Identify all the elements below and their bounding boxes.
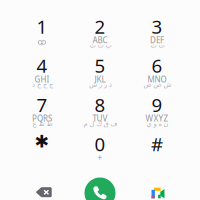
staticText: JKL: [94, 74, 105, 85]
staticText: WXYZ: [145, 113, 168, 124]
button[interactable]: 0: [72, 132, 128, 168]
staticText: 2: [94, 14, 105, 39]
button[interactable]: Delete: [22, 175, 66, 200]
staticText: ج ح خ د: [31, 81, 52, 88]
staticText: ش ص ض: [143, 81, 171, 88]
button[interactable]: 3: [129, 14, 185, 50]
staticText: #: [151, 132, 163, 156]
staticText: +: [97, 152, 102, 163]
staticText: 3: [151, 14, 162, 39]
staticText: ن ه و ي: [146, 120, 168, 127]
button[interactable]: 6: [129, 53, 185, 89]
staticText: ABC: [92, 35, 107, 45]
staticText: DEF: [150, 35, 164, 45]
button[interactable]: #: [129, 132, 185, 168]
button[interactable]: Call: [78, 174, 122, 200]
button[interactable]: 5: [72, 53, 128, 89]
button[interactable]: 8: [72, 92, 128, 128]
button[interactable]: 7: [14, 92, 70, 128]
staticText: 6: [151, 53, 162, 78]
staticText: ب ت ث: [89, 41, 111, 49]
staticText: ت ث: [150, 41, 164, 49]
staticText: MNO: [147, 74, 166, 85]
staticText: TUV: [92, 113, 107, 124]
staticText: ذ ر ز س: [88, 81, 111, 88]
staticText: ف ق ك ل م: [83, 120, 117, 127]
staticText: ✱: [34, 132, 49, 151]
staticText: 4: [36, 53, 47, 78]
staticText: 8: [94, 92, 105, 117]
staticText: 0: [94, 132, 105, 156]
button[interactable]: 1: [14, 14, 70, 50]
button[interactable]: 2: [72, 14, 128, 50]
staticText: 1: [36, 14, 47, 39]
staticText: 9: [151, 92, 162, 117]
staticText: GHI: [34, 74, 49, 85]
staticText: PQRS: [32, 113, 52, 124]
staticText: 7: [36, 92, 47, 117]
button[interactable]: 9: [129, 92, 185, 128]
button[interactable]: ✱: [14, 132, 70, 168]
button[interactable]: 4: [14, 53, 70, 89]
staticText: ط ظ ع: [32, 120, 52, 127]
staticText: 5: [94, 53, 105, 78]
button[interactable]: Video call: [136, 176, 180, 200]
